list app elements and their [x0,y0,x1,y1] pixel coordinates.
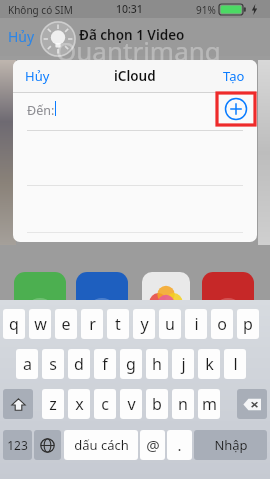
staticText: r [89,313,96,335]
staticText: i [194,313,199,335]
staticText: w [34,313,47,335]
button[interactable]: Nhập [194,430,267,460]
button[interactable]: Hủy [25,67,50,85]
button[interactable]: y [133,309,155,339]
button[interactable]: l [224,349,246,379]
button[interactable]: 123 [3,430,32,460]
button[interactable]: @ [140,430,165,460]
staticText: t [115,313,121,335]
button[interactable]: x [68,389,90,419]
button[interactable] [237,389,267,419]
button[interactable]: z [42,389,64,419]
staticText: h [152,353,162,375]
button[interactable]: v [120,389,142,419]
staticText: d [74,353,84,375]
staticText: e [61,313,71,335]
staticText: q [9,313,19,335]
staticText: Đến: [27,102,55,119]
staticText: y [140,313,149,335]
other: Đổi bàn phím [40,438,55,453]
staticText: 91% [196,3,216,17]
staticText: v [127,393,136,415]
staticText: z [49,393,57,415]
button[interactable]: j [172,349,194,379]
staticText: iCloud [114,67,156,85]
staticText: j [181,353,186,375]
button[interactable]: t [107,309,129,339]
staticText: a [23,353,32,375]
button[interactable]: Hủy [8,27,35,46]
button[interactable]: h [146,349,168,379]
button[interactable]: b [146,389,168,419]
staticText: n [178,393,188,415]
staticText: Đã chọn 1 Video [79,26,185,44]
staticText: Hủy [25,67,50,85]
staticText: 123 [7,437,28,453]
staticText: l [233,353,238,375]
staticText: x [75,393,84,415]
button[interactable]: c [94,389,116,419]
staticText: k [205,353,214,375]
button[interactable]: s [42,349,64,379]
staticText: m [202,393,217,415]
staticText: Không có SIM [8,3,73,17]
staticText: @ [146,435,160,455]
button[interactable]: r [81,309,103,339]
staticText: 10:31 [116,2,143,16]
button[interactable]: w [29,309,51,339]
staticText: c [101,393,109,415]
button[interactable]: q [3,309,25,339]
button[interactable]: dấu cách [64,430,138,460]
button[interactable]: a [16,349,38,379]
button[interactable]: Đến: [13,93,257,125]
staticText: Hủy [8,27,35,46]
button[interactable]: . [167,430,192,460]
button[interactable]: o [211,309,233,339]
staticText: g [126,353,136,375]
staticText: f [102,353,108,375]
button[interactable]: d [68,349,90,379]
staticText: u [165,313,175,335]
button[interactable] [3,389,33,419]
button[interactable]: i [185,309,207,339]
button[interactable]: Thêm người [217,93,255,125]
staticText: Quantrimang [56,33,221,68]
button[interactable]: Tạo [223,67,245,85]
button[interactable]: p [237,309,259,339]
button[interactable]: n [172,389,194,419]
button[interactable]: g [120,349,142,379]
button[interactable]: m [198,389,220,419]
staticText: o [217,313,227,335]
staticText: p [243,313,253,335]
staticText: Tạo [223,67,245,85]
staticText: dấu cách [74,436,129,454]
button[interactable]: k [198,349,220,379]
staticText: Nhập [214,436,248,454]
button[interactable]: e [55,309,77,339]
staticText: s [49,353,57,375]
button[interactable]: f [94,349,116,379]
staticText: b [152,393,162,415]
button[interactable]: Đổi bàn phím [34,430,61,460]
button[interactable]: u [159,309,181,339]
staticText: . [177,435,182,455]
